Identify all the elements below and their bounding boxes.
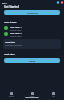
button[interactable]: You: [43, 90, 64, 100]
button[interactable]: Tasks: [22, 90, 43, 100]
staticText: Card title: [5, 41, 16, 44]
staticText: Next step: [4, 53, 15, 56]
button[interactable]: Task item 2: [4, 31, 60, 37]
staticText: Your tasks: [4, 20, 17, 23]
button[interactable]: Task item 1: [4, 25, 60, 31]
staticText: Continue: [27, 11, 38, 14]
button[interactable]: Done: [4, 58, 60, 63]
staticText: Get Started: [4, 5, 19, 9]
staticText: Card body text here: [5, 44, 22, 46]
staticText: Tasks: [30, 95, 35, 97]
staticText: subtitle detail: [10, 29, 22, 31]
staticText: Home: [9, 95, 14, 97]
staticText: Done: [29, 59, 36, 62]
button[interactable]: Card title: [3, 39, 61, 49]
staticText: 9:41: [2, 1, 7, 4]
staticText: Task item 1: [10, 26, 22, 29]
button[interactable]: Continue: [4, 10, 60, 15]
button[interactable]: Home: [0, 90, 22, 100]
staticText: Task item 2: [10, 32, 22, 35]
staticText: subtitle detail: [10, 35, 22, 37]
staticText: You: [52, 95, 55, 97]
